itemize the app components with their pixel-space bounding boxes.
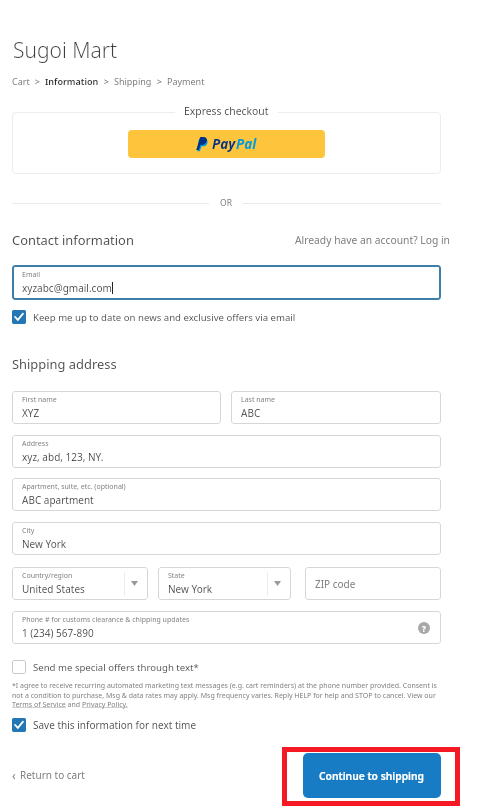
staticText: Pal xyxy=(236,135,257,153)
staticText: ABC apartment xyxy=(22,493,94,507)
button[interactable]: Save this information for next time xyxy=(12,718,197,732)
button[interactable]: First name xyxy=(12,391,221,424)
staticText: Address xyxy=(22,439,49,449)
button[interactable]: Continue to shipping xyxy=(303,753,441,798)
staticText: Keep me up to date on news and exclusive… xyxy=(33,311,296,324)
staticText: ABC xyxy=(241,406,261,420)
staticText: United States xyxy=(22,582,85,596)
button[interactable]: Last name xyxy=(231,391,441,424)
staticText: Contact information xyxy=(12,231,134,249)
staticText: ? xyxy=(422,623,426,634)
button[interactable]: Shipping xyxy=(114,75,152,87)
button[interactable]: Address xyxy=(12,435,441,468)
staticText: First name xyxy=(22,395,57,405)
button[interactable]: ‹ xyxy=(12,767,85,783)
button[interactable]: Checkout with PayPal xyxy=(128,130,325,158)
staticText: Last name xyxy=(241,395,276,405)
button[interactable]: Country/region xyxy=(12,567,148,600)
button[interactable]: Send me special offers through text* xyxy=(12,660,199,674)
staticText: Sugoi Mart xyxy=(13,36,118,65)
button[interactable]: State xyxy=(158,567,291,600)
button[interactable]: Cart xyxy=(12,75,30,87)
button[interactable]: City xyxy=(12,522,441,555)
button[interactable]: Email xyxy=(12,265,441,300)
staticText: *I agree to receive recurring automated … xyxy=(12,681,441,709)
staticText: > xyxy=(30,75,45,87)
staticText: Express checkout xyxy=(184,104,269,118)
button[interactable]: ZIP code xyxy=(305,567,441,600)
button[interactable]: Phone # for customs clearance & chipping… xyxy=(12,611,441,644)
staticText: Pay xyxy=(212,135,236,153)
button[interactable]: Keep me up to date on news and exclusive… xyxy=(12,310,296,324)
staticText: ZIP code xyxy=(315,577,356,591)
staticText: > xyxy=(152,75,167,87)
staticText: Phone # for customs clearance & chipping… xyxy=(22,615,190,625)
staticText: Save this information for next time xyxy=(33,718,197,732)
staticText: Send me special offers through text* xyxy=(33,661,199,674)
staticText: Return to cart xyxy=(20,768,85,782)
staticText: 1 (234) 567-890 xyxy=(22,626,94,640)
button[interactable]: Information xyxy=(45,75,99,87)
staticText: XYZ xyxy=(22,406,40,420)
button[interactable]: Payment xyxy=(167,75,205,87)
staticText: New York xyxy=(168,582,213,596)
staticText: State xyxy=(168,571,185,581)
staticText: Apartment, suite, etc. (optional) xyxy=(22,482,126,492)
staticText: xyz, abd, 123, NY. xyxy=(22,450,104,464)
staticText: Continue to shipping xyxy=(319,769,425,783)
staticText: Shipping address xyxy=(12,355,117,373)
staticText: Country/region xyxy=(22,571,73,581)
staticText: New York xyxy=(22,537,67,551)
staticText: xyzabc@gmail.com xyxy=(22,281,112,295)
staticText: > xyxy=(99,75,114,87)
staticText: City xyxy=(22,526,35,536)
button[interactable]: Apartment, suite, etc. (optional) xyxy=(12,478,441,511)
button[interactable]: Already have an account? Log in xyxy=(295,233,450,247)
staticText: ‹ xyxy=(12,767,16,783)
staticText: Email xyxy=(22,270,40,280)
staticText: OR xyxy=(220,197,232,209)
